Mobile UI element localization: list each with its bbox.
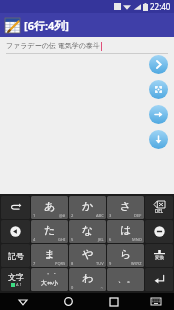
staticText: ファラデーの伝 電気学の泰斗 <box>6 41 100 51</box>
staticText: DEL <box>155 208 164 214</box>
staticText: ABC <box>96 213 104 218</box>
button[interactable]: Previous candidate <box>1 220 30 243</box>
staticText: ～ <box>100 285 104 290</box>
staticText: DEF <box>134 213 142 218</box>
staticText: 6 <box>109 237 112 242</box>
other: Enter <box>153 273 166 286</box>
button[interactable]: Enter <box>145 268 173 291</box>
staticText: [6行:4列] <box>24 18 69 33</box>
staticText: 3 <box>109 213 112 218</box>
staticText: GHI <box>58 237 66 242</box>
staticText: た <box>44 223 56 237</box>
staticText: A 1 <box>16 282 22 287</box>
staticText: や <box>82 247 94 261</box>
staticText: JKL <box>98 237 104 242</box>
staticText: 、 。 <box>118 275 134 285</box>
button[interactable]: ゛ ゜ <box>31 268 68 291</box>
staticText: 5 <box>71 237 74 242</box>
button[interactable]: 記号 <box>1 244 30 267</box>
staticText: 変換 <box>155 255 164 261</box>
staticText: MNO <box>132 237 142 242</box>
button[interactable]: た <box>31 220 68 243</box>
staticText: さ <box>120 199 132 213</box>
button[interactable]: Delete <box>145 196 173 219</box>
button[interactable]: Next candidate <box>145 220 173 243</box>
staticText: 7 <box>33 261 36 266</box>
staticText: な <box>82 223 94 237</box>
staticText: わ <box>82 271 94 285</box>
button[interactable]: ま <box>31 244 68 267</box>
other: Previous candidate <box>9 225 22 238</box>
button[interactable]: や <box>69 244 106 267</box>
staticText: か <box>82 199 94 213</box>
button[interactable]: か <box>69 196 106 219</box>
staticText: 1 <box>33 213 36 218</box>
button[interactable]: さ <box>107 196 144 219</box>
button[interactable]: は <box>107 220 144 243</box>
other: Undo <box>9 201 22 214</box>
button[interactable]: Next cell <box>149 55 168 74</box>
other: Next candidate <box>153 225 166 238</box>
staticText: 2 <box>71 213 74 218</box>
staticText: 22:40 <box>150 1 171 12</box>
staticText: 9 <box>109 261 112 266</box>
staticText: TUV <box>96 261 104 266</box>
button[interactable]: な <box>69 220 106 243</box>
staticText: は <box>120 223 132 237</box>
staticText: 8 <box>71 261 74 266</box>
button[interactable]: Hide keyboard <box>0 293 45 310</box>
button[interactable]: あ <box>31 196 68 219</box>
button[interactable]: Move down <box>149 130 168 149</box>
staticText: 0 <box>71 285 74 290</box>
button[interactable]: Convert <box>145 244 173 267</box>
staticText: @# <box>59 213 66 218</box>
staticText: WXYZ <box>131 261 142 266</box>
staticText: 4 <box>33 237 36 242</box>
staticText: 大⇔小 <box>41 279 59 287</box>
staticText: あ <box>44 199 56 213</box>
button[interactable]: 、 。 <box>107 268 144 291</box>
staticText: PQRS <box>55 261 66 266</box>
button[interactable]: Undo <box>1 196 30 219</box>
staticText: 文字 <box>8 272 24 282</box>
staticText: ま <box>44 247 56 261</box>
button[interactable]: Switch keyboard <box>137 293 174 310</box>
button[interactable]: Fit <box>149 80 168 99</box>
button[interactable]: わ <box>69 268 106 291</box>
button[interactable]: Move right <box>149 105 168 124</box>
other: Convert <box>153 249 166 262</box>
button[interactable]: 文字 <box>1 268 30 291</box>
staticText: ゛ ゜ <box>44 272 56 279</box>
other: Delete <box>153 201 166 214</box>
button[interactable]: Home <box>45 293 91 310</box>
staticText: 記号 <box>8 251 24 261</box>
staticText: ら <box>120 247 132 261</box>
button[interactable]: ら <box>107 244 144 267</box>
button[interactable]: Recents <box>91 293 137 310</box>
